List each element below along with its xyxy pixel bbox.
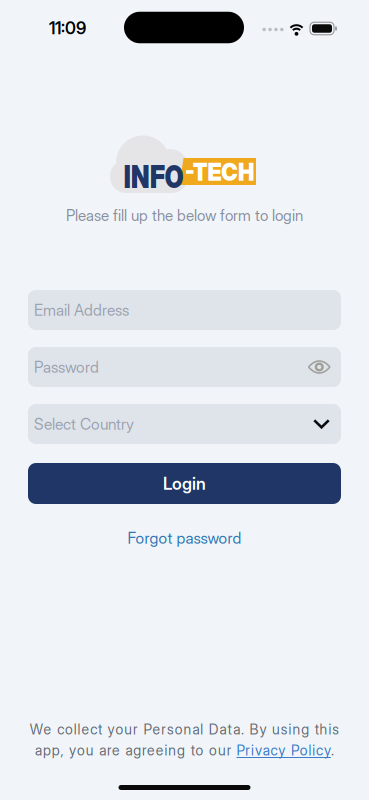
button[interactable]: Privacy Policy <box>236 742 331 759</box>
staticText: Password <box>34 358 99 376</box>
staticText: Login <box>163 473 206 494</box>
staticText: Select Country <box>34 415 134 433</box>
button[interactable]: Forgot password <box>127 529 241 547</box>
staticText: Please fill up the below form to login <box>66 206 303 224</box>
staticText: Privacy Policy <box>236 742 331 759</box>
button[interactable]: Show password <box>308 360 330 373</box>
staticText: We collect your Personal Data. By using … <box>30 721 339 738</box>
staticText: . <box>331 742 334 759</box>
staticText: Forgot password <box>127 529 241 547</box>
staticText: INFO <box>117 159 190 195</box>
button[interactable]: Select Country <box>28 404 341 444</box>
button[interactable]: Password <box>28 347 341 387</box>
staticText: Email Address <box>34 301 129 319</box>
staticText: 11:09 <box>49 18 86 38</box>
button[interactable]: Email Address <box>28 290 341 330</box>
button[interactable]: Login <box>28 463 341 504</box>
staticText: app, you are agreeing to our <box>35 742 236 759</box>
staticText: -TECH <box>181 157 257 186</box>
